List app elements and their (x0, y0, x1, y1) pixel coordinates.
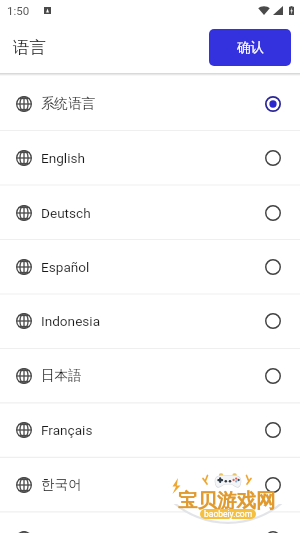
button[interactable]: 系统语言 (0, 77, 300, 130)
button[interactable]: Select (260, 472, 286, 498)
button[interactable]: Select (260, 526, 286, 533)
button[interactable]: Select (260, 145, 286, 171)
staticText: 1:50 (7, 4, 30, 17)
button[interactable]: Select (260, 254, 286, 280)
button[interactable]: Select (260, 363, 286, 389)
staticText: 系统语言 (41, 95, 96, 112)
button[interactable]: Deutsch (0, 186, 300, 239)
button[interactable]: Français (0, 403, 300, 456)
staticText: 确认 (237, 39, 264, 56)
button[interactable]: Indonesia (0, 294, 300, 347)
button[interactable]: Selected (260, 91, 286, 117)
staticText: Indonesia (41, 313, 101, 329)
staticText: Español (41, 259, 90, 275)
button[interactable]: 确认 (209, 29, 291, 66)
staticText: English (41, 150, 85, 166)
button[interactable]: Select (260, 200, 286, 226)
button[interactable]: Select (260, 308, 286, 334)
staticText: 宝贝游戏网 (178, 488, 276, 513)
button[interactable]: Italiano (0, 512, 300, 533)
staticText: 语言 (13, 37, 46, 58)
staticText: Deutsch (41, 205, 91, 221)
button[interactable]: English (0, 131, 300, 184)
staticText: Français (41, 422, 93, 438)
staticText: baobeiy.com (204, 509, 253, 519)
button[interactable]: 한국어 (0, 458, 300, 511)
button[interactable]: Español (0, 240, 300, 293)
staticText: 한국어 (41, 476, 82, 493)
staticText: 日本語 (41, 367, 82, 384)
button[interactable]: Select (260, 417, 286, 443)
button[interactable]: 日本語 (0, 349, 300, 402)
